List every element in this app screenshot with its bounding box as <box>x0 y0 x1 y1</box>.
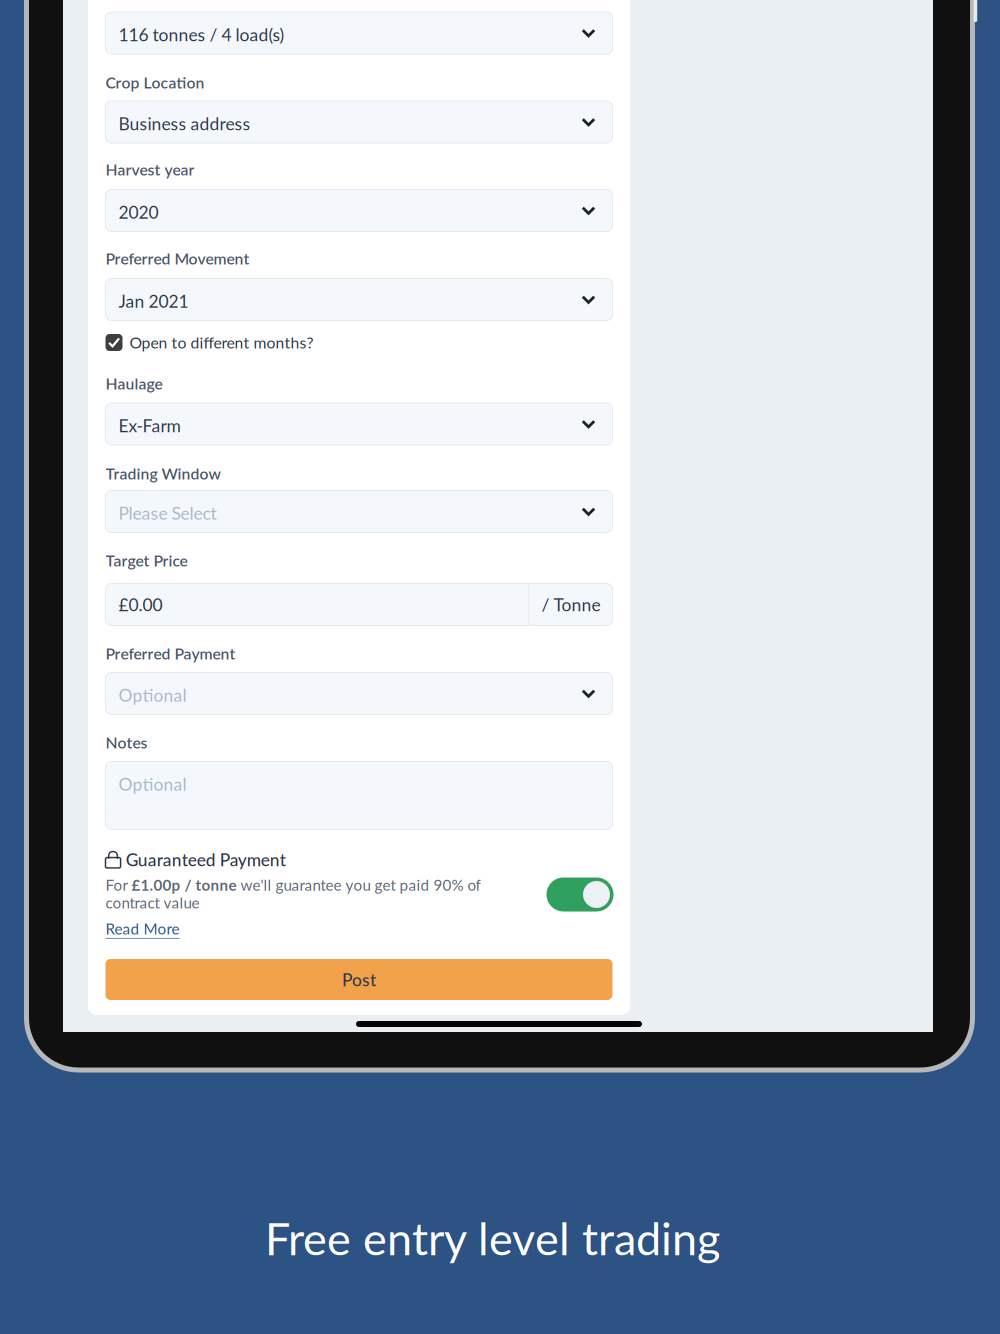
button[interactable]: Guaranteed Payment <box>546 877 613 911</box>
button[interactable]: 116 tonnes / 4 load(s) <box>105 12 612 54</box>
staticText: Ex-Farm <box>118 415 180 436</box>
staticText: Optional <box>118 773 186 794</box>
button[interactable]: Jan 2021 <box>105 278 612 320</box>
staticText: Business address <box>118 113 250 134</box>
button[interactable]: 2020 <box>105 189 612 231</box>
staticText: Read More <box>105 919 179 938</box>
staticText: Preferred Movement <box>105 249 249 268</box>
staticText: Target Price <box>105 551 187 570</box>
staticText: Please Select <box>118 503 216 524</box>
staticText: Crop Location <box>105 73 204 92</box>
button[interactable]: Business address <box>105 101 612 143</box>
button[interactable]: Open to different months? <box>105 334 612 351</box>
staticText: Haulage <box>105 374 162 393</box>
staticText: Trading Window <box>105 464 221 483</box>
button[interactable]: Post <box>105 959 612 1000</box>
button[interactable]: Read More <box>105 918 215 938</box>
staticText: Guaranteed Payment <box>126 849 286 870</box>
staticText: For £1.00p / tonne we'll guarantee you g… <box>105 876 480 912</box>
staticText: 116 tonnes / 4 load(s) <box>118 24 284 45</box>
staticText: / Tonne <box>541 594 600 615</box>
staticText: Post <box>342 969 376 990</box>
staticText: Jan 2021 <box>118 291 188 312</box>
staticText: 2020 <box>118 202 158 223</box>
staticText: Free entry level trading <box>265 1211 720 1265</box>
staticText: £0.00 <box>118 594 162 615</box>
button[interactable]: Optional <box>105 672 612 714</box>
button[interactable]: Ex-Farm <box>105 403 612 445</box>
staticText: Preferred Payment <box>105 644 235 663</box>
staticText: Harvest year <box>105 160 194 179</box>
staticText: Optional <box>118 685 186 706</box>
staticText: Notes <box>105 733 147 752</box>
button[interactable]: Please Select <box>105 490 612 532</box>
staticText: Open to different months? <box>129 333 313 352</box>
